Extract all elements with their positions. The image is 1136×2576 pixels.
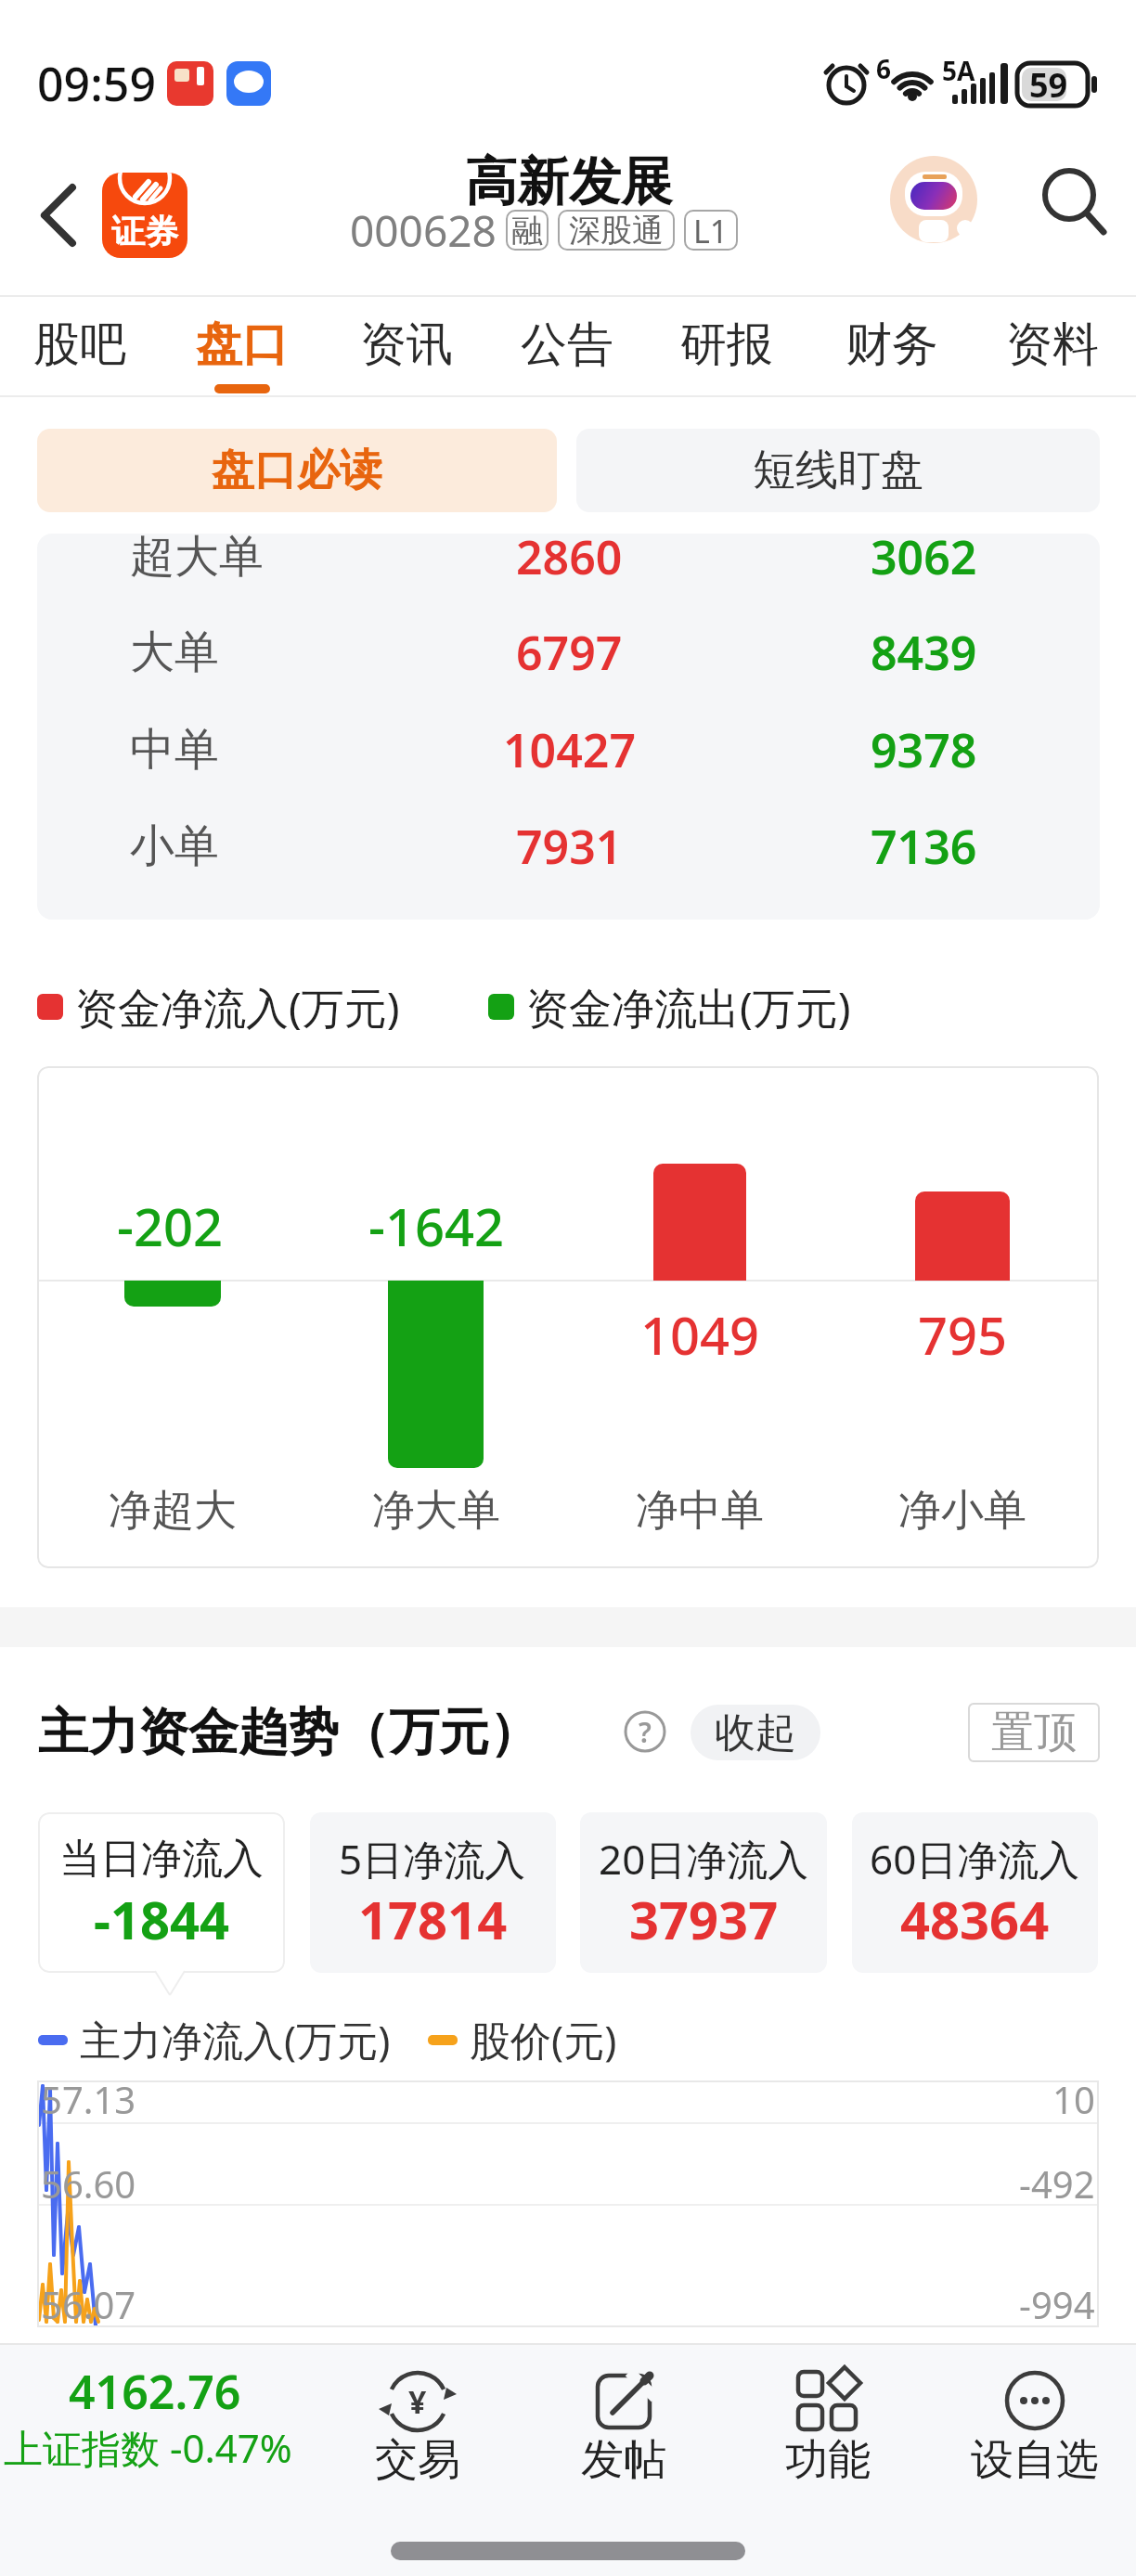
staticText: 000628 (350, 201, 497, 260)
staticText: -492 (1019, 2158, 1095, 2209)
staticText: 2860 (516, 525, 623, 588)
staticText: 大单 (130, 625, 219, 680)
staticText: 净小单 (898, 1484, 1026, 1538)
staticText: L1 (693, 210, 729, 251)
staticText: 5日净流入 (339, 1831, 526, 1887)
staticText: 证券 (111, 211, 178, 252)
staticText: 当日净流入 (59, 1834, 264, 1885)
staticText: 资讯 (360, 316, 453, 374)
staticText: 融 (511, 211, 543, 251)
staticText: 6 (876, 51, 892, 86)
staticText: 财务 (846, 316, 938, 374)
staticText: 小单 (130, 818, 219, 874)
staticText: 超大单 (130, 529, 264, 585)
staticText: -994 (1019, 2279, 1095, 2329)
staticText: 净大单 (372, 1484, 500, 1538)
staticText: 7136 (871, 815, 977, 878)
staticText: 中单 (130, 722, 219, 778)
staticText: 上证指数 -0.47% (4, 2421, 292, 2474)
staticText: 净中单 (636, 1484, 764, 1538)
staticText: 功能 (785, 2433, 871, 2487)
staticText: -1844 (94, 1884, 230, 1954)
staticText: 资料 (1006, 316, 1099, 374)
staticText: 57.13 (41, 2074, 136, 2124)
staticText: 60日净流入 (870, 1831, 1080, 1887)
staticText: 20日净流入 (599, 1831, 809, 1887)
staticText: 交易 (375, 2433, 460, 2487)
staticText: -1642 (368, 1191, 505, 1261)
staticText: 置顶 (991, 1706, 1077, 1759)
staticText: 10 (1052, 2074, 1095, 2124)
staticText: 研报 (680, 316, 773, 374)
staticText: 17814 (358, 1884, 508, 1954)
staticText: 公告 (521, 316, 613, 374)
staticText: 56.60 (41, 2158, 136, 2209)
staticText: 4162.76 (69, 2360, 241, 2423)
staticText: 资金净流出(万元) (526, 978, 851, 1037)
staticText: 股价(元) (470, 2012, 617, 2067)
staticText: 主力净流入(万元) (80, 2012, 391, 2067)
staticText: 7931 (516, 815, 623, 878)
staticText: 主力资金趋势（万元） (38, 1701, 539, 1764)
staticText: 56.07 (41, 2279, 136, 2329)
staticText: 8439 (871, 621, 977, 684)
staticText: 股吧 (33, 316, 126, 374)
staticText: 5A (942, 53, 975, 88)
staticText: 收起 (715, 1707, 796, 1758)
staticText: 深股通 (569, 211, 664, 251)
staticText: 盘口 (196, 316, 289, 374)
staticText: 3062 (871, 525, 977, 588)
staticText: 795 (918, 1299, 1008, 1370)
staticText: 净超大 (109, 1484, 237, 1538)
staticText: 09:59 (37, 52, 156, 115)
staticText: 48364 (900, 1884, 1050, 1954)
staticText: ¥ (408, 2380, 427, 2423)
staticText: ? (639, 1713, 652, 1751)
staticText: 资金净流入(万元) (75, 978, 400, 1037)
staticText: 6797 (516, 621, 623, 684)
staticText: 盘口必读 (212, 444, 382, 497)
staticText: 1049 (640, 1299, 760, 1370)
staticText: 设自选 (971, 2433, 1099, 2487)
staticText: 短线盯盘 (753, 444, 923, 497)
staticText: -202 (117, 1191, 224, 1261)
staticText: 37937 (629, 1884, 779, 1954)
staticText: 高新发展 (465, 149, 673, 215)
staticText: 发帖 (581, 2433, 666, 2487)
staticText: 59 (1029, 62, 1068, 108)
staticText: 10427 (503, 718, 636, 781)
staticText: 9378 (871, 718, 977, 781)
